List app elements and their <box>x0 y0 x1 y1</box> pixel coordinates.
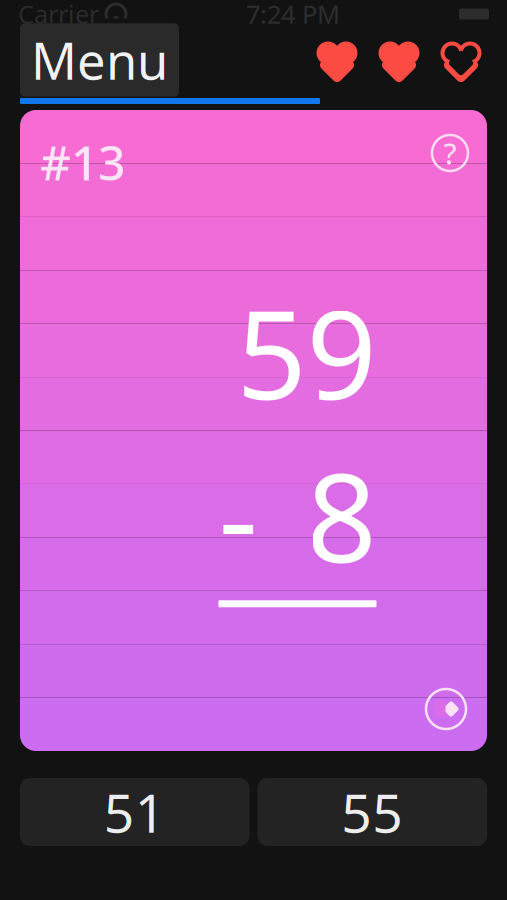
button[interactable]: Hint <box>427 130 473 176</box>
staticText: 55 <box>341 777 403 847</box>
staticText: Carrier <box>18 0 99 31</box>
staticText: ? <box>443 133 456 172</box>
staticText: 59 <box>236 270 376 433</box>
staticText: Menu <box>31 26 168 94</box>
staticText: #13 <box>40 130 125 194</box>
button[interactable]: Life remaining <box>315 39 359 81</box>
button[interactable]: Play sound <box>421 684 471 734</box>
button[interactable]: 55 <box>257 778 487 846</box>
button[interactable]: 51 <box>20 778 249 846</box>
staticText: - <box>218 433 257 596</box>
staticText: 8 <box>306 433 376 596</box>
button[interactable]: Life remaining <box>377 39 421 81</box>
staticText: 7:24 PM <box>246 0 340 31</box>
button[interactable]: Life lost <box>439 39 483 81</box>
button[interactable]: Menu <box>20 23 179 97</box>
staticText: 51 <box>104 777 166 847</box>
